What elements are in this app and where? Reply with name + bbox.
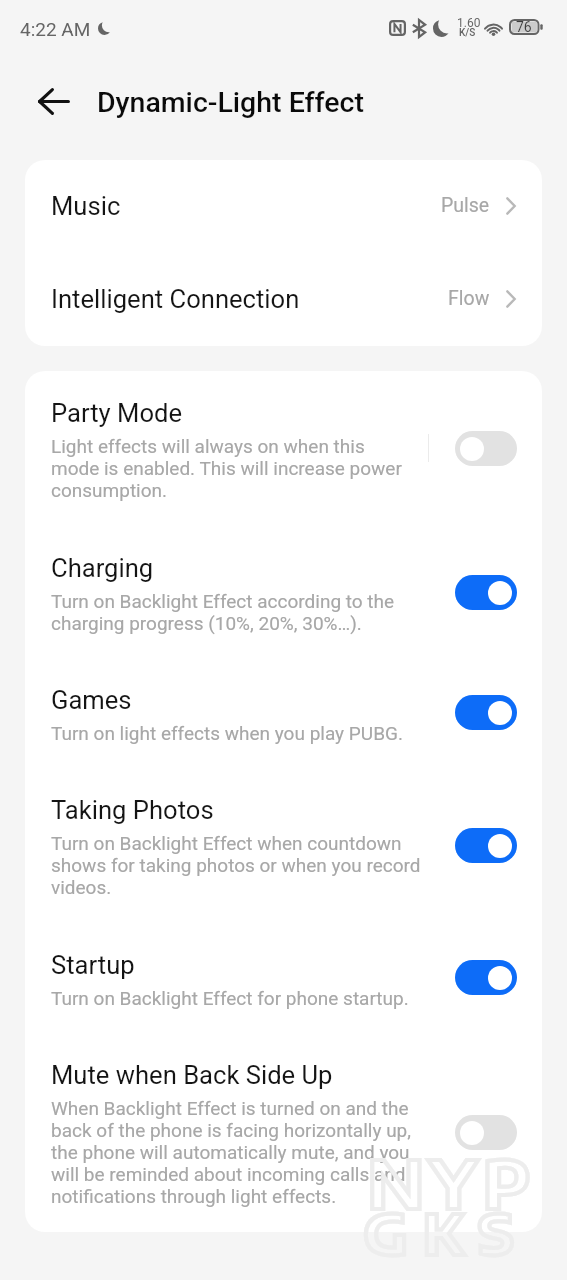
- staticText: Flow: [448, 287, 490, 310]
- staticText: Music: [51, 192, 121, 221]
- button[interactable]: Toggle: [455, 575, 517, 610]
- staticText: Turn on Backlight Effect for phone start…: [51, 987, 426, 1009]
- staticText: Turn on light effects when you play PUBG…: [51, 722, 426, 744]
- button[interactable]: Party Mode: [25, 371, 542, 526]
- staticText: Charging: [51, 554, 154, 583]
- staticText: Light effects will always on when this m…: [51, 435, 405, 501]
- staticText: Turn on Backlight Effect according to th…: [51, 590, 426, 634]
- staticText: Mute when Back Side Up: [51, 1061, 333, 1090]
- button[interactable]: Toggle: [455, 431, 517, 466]
- button[interactable]: Mute when Back Side Up: [25, 1033, 542, 1232]
- staticText: Games: [51, 686, 132, 715]
- staticText: Taking Photos: [51, 796, 214, 825]
- staticText: K/S: [459, 27, 476, 39]
- staticText: Pulse: [441, 194, 490, 217]
- staticText: NYP: [367, 1141, 536, 1223]
- staticText: 4:22 AM: [20, 18, 91, 40]
- button[interactable]: Startup: [25, 923, 542, 1033]
- staticText: When Backlight Effect is turned on and t…: [51, 1097, 426, 1207]
- button[interactable]: Toggle: [455, 828, 517, 863]
- staticText: Startup: [51, 951, 135, 980]
- staticText: GKS: [363, 1197, 529, 1267]
- button[interactable]: Music: [25, 160, 542, 253]
- button[interactable]: Toggle: [455, 1115, 517, 1150]
- button[interactable]: Charging: [25, 526, 542, 658]
- button[interactable]: Games: [25, 658, 542, 768]
- button[interactable]: Intelligent Connection: [25, 253, 542, 346]
- button[interactable]: Toggle: [455, 960, 517, 995]
- staticText: Turn on Backlight Effect when countdown …: [51, 832, 426, 898]
- staticText: Party Mode: [51, 399, 183, 428]
- staticText: 1.60: [457, 16, 481, 30]
- staticText: Dynamic-Light Effect: [97, 86, 364, 119]
- staticText: 76: [516, 19, 532, 35]
- staticText: Intelligent Connection: [51, 285, 300, 314]
- button[interactable]: Toggle: [455, 695, 517, 730]
- button[interactable]: Back: [23, 75, 85, 127]
- button[interactable]: Taking Photos: [25, 768, 542, 923]
